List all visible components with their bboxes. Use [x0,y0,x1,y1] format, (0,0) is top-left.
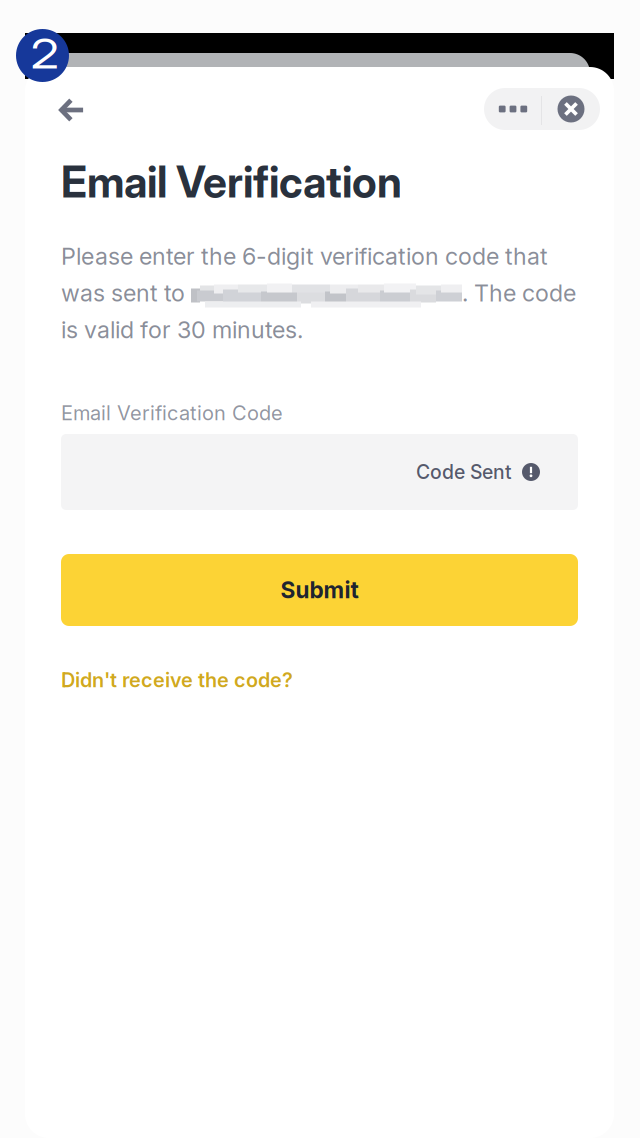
staticText: was sent to [61,279,191,307]
button[interactable]: Didn't receive the code? [61,666,361,694]
staticText: Email Verification Code [61,401,283,425]
staticText: 2 [33,28,56,78]
staticText: Didn't receive the code? [61,668,293,692]
staticText: . The code [462,279,576,307]
button[interactable]: Close [542,88,600,130]
button[interactable]: Submit [61,554,578,626]
button[interactable]: Back [47,89,97,131]
staticText: Code Sent [416,460,512,484]
staticText: Submit [280,576,358,604]
button[interactable]: More options [484,88,542,130]
staticText: Email Verification [61,156,402,208]
staticText: is valid for 30 minutes. [61,316,303,344]
staticText: Please enter the 6-digit verification co… [61,242,548,270]
